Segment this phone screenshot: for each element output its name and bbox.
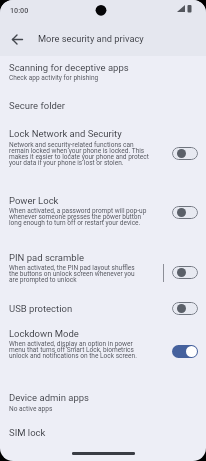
button[interactable] (0, 298, 206, 324)
staticText: More security and privacy (38, 33, 144, 44)
button[interactable] (0, 324, 206, 368)
button[interactable] (0, 247, 206, 291)
button[interactable] (0, 422, 206, 448)
button[interactable] (6, 33, 20, 47)
staticText: Scanning for deceptive apps (9, 62, 129, 73)
button[interactable] (172, 266, 198, 279)
button[interactable] (0, 122, 206, 174)
staticText: Device admin apps (9, 392, 89, 403)
staticText: SIM lock (9, 427, 46, 438)
button[interactable] (0, 92, 206, 120)
staticText: Network and security-related functions c… (9, 141, 149, 166)
button[interactable] (172, 147, 198, 160)
staticText: 10:00 (10, 6, 29, 14)
staticText: Check app activity for phishing (9, 74, 99, 82)
staticText: Power Lock (9, 195, 59, 206)
staticText: When activated, display an option in pow… (9, 340, 137, 359)
button[interactable] (0, 190, 206, 234)
button[interactable] (172, 206, 198, 219)
staticText: No active apps (9, 405, 53, 413)
staticText: Lockdown Mode (9, 328, 79, 339)
staticText: Secure folder (9, 100, 66, 111)
button[interactable] (0, 58, 206, 90)
button[interactable] (172, 302, 198, 315)
staticText: Lock Network and Security (9, 128, 122, 139)
button[interactable] (0, 388, 206, 418)
button[interactable] (172, 345, 198, 358)
staticText: PIN pad scramble (9, 252, 85, 263)
staticText: USB protection (9, 303, 73, 314)
staticText: When activated, a password prompt will p… (9, 207, 147, 226)
staticText: When activated, the PIN pad layout shuff… (9, 264, 135, 283)
